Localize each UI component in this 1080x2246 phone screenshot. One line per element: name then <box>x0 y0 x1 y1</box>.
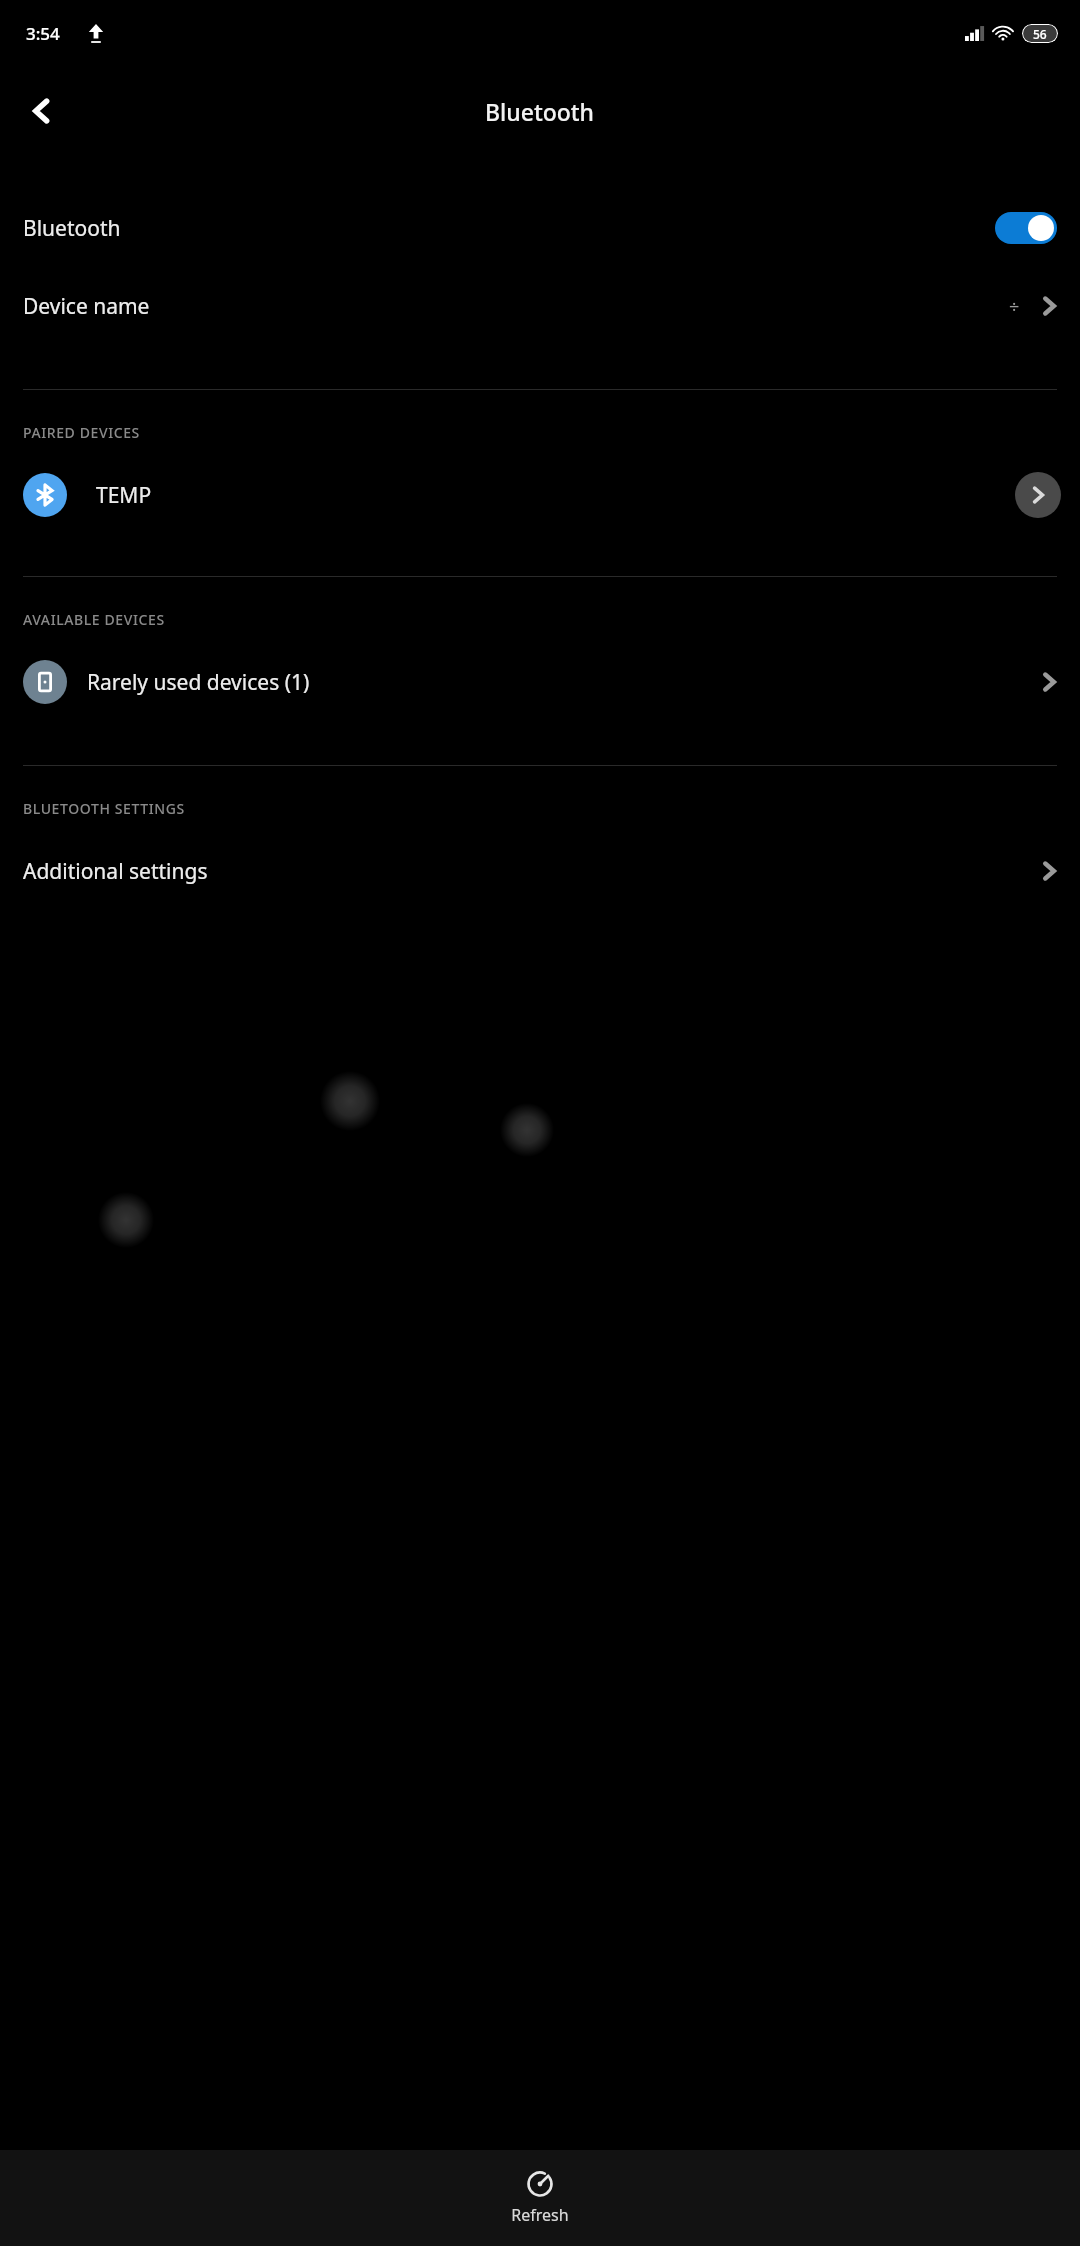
button[interactable]: Bluetooth <box>0 189 1080 267</box>
staticText: BLUETOOTH SETTINGS <box>23 799 185 818</box>
button[interactable]: Device name <box>0 267 1080 345</box>
staticText: PAIRED DEVICES <box>23 423 140 442</box>
staticText: Bluetooth <box>23 214 995 243</box>
staticText: 3:54 <box>26 22 60 45</box>
staticText: Bluetooth <box>485 96 595 127</box>
staticText: ÷ <box>1009 294 1020 319</box>
button[interactable]: Additional settings <box>0 818 1080 924</box>
staticText: Device name <box>23 292 1009 321</box>
staticText: Refresh <box>511 2204 569 2226</box>
staticText: AVAILABLE DEVICES <box>23 610 165 629</box>
button[interactable]: Rarely used devices (1) <box>0 629 1080 735</box>
button[interactable]: TEMP <box>0 442 1080 548</box>
button[interactable]: Device settings <box>1015 472 1061 518</box>
button[interactable]: Refresh <box>477 2165 603 2232</box>
staticText: TEMP <box>96 481 1015 510</box>
button[interactable]: Back <box>14 83 70 139</box>
staticText: Rarely used devices (1) <box>87 668 1038 697</box>
staticText: Additional settings <box>23 857 1038 886</box>
staticText: 56 <box>1033 26 1047 42</box>
